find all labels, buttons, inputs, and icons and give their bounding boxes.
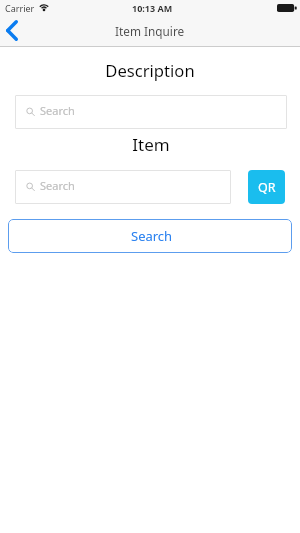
staticText: QR <box>258 179 276 196</box>
staticText: Carrier <box>5 2 35 14</box>
staticText: Search <box>40 103 75 118</box>
staticText: 10:13 AM <box>132 2 173 14</box>
staticText: Item <box>1 133 300 156</box>
staticText: Item Inquire <box>115 23 185 39</box>
button[interactable]: Search <box>8 219 292 253</box>
button[interactable]: Scan QR code <box>248 170 285 204</box>
button[interactable]: Search <box>15 95 287 129</box>
staticText: Search <box>131 227 173 245</box>
button[interactable]: Search <box>15 170 231 204</box>
staticText: Search <box>40 178 75 193</box>
button[interactable]: Back <box>0 15 30 41</box>
staticText: Description <box>0 59 300 82</box>
